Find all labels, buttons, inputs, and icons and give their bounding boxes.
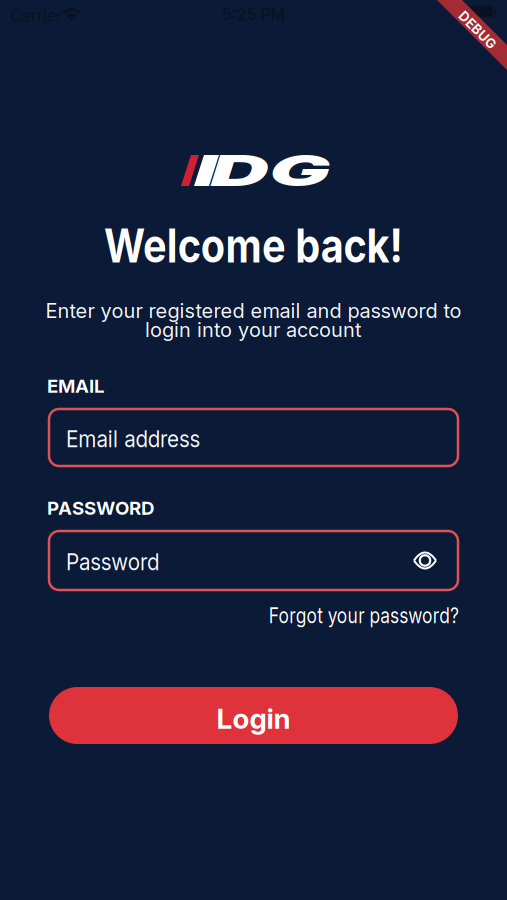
staticText: Password	[66, 547, 173, 576]
button[interactable]: Email address	[49, 409, 458, 466]
staticText: DG	[238, 145, 301, 196]
staticText: Forgot your password?	[227, 603, 459, 628]
button[interactable]: Forgot your password?	[227, 603, 459, 628]
staticText: Welcome back!	[77, 218, 429, 273]
staticText: Enter your registered email and password…	[45, 299, 461, 323]
staticText: Carrier	[10, 6, 62, 25]
staticText: 5:25 PM	[221, 5, 285, 24]
staticText: EMAIL	[47, 375, 105, 397]
button[interactable]: Password	[49, 531, 458, 590]
button[interactable]: Show password	[408, 543, 442, 577]
staticText: login into your account	[145, 318, 362, 342]
staticText: DEBUG	[454, 22, 501, 38]
staticText: Login	[216, 702, 290, 735]
button[interactable]: Login	[49, 687, 458, 744]
staticText: Email address	[66, 424, 220, 453]
staticText: PASSWORD	[47, 497, 154, 519]
